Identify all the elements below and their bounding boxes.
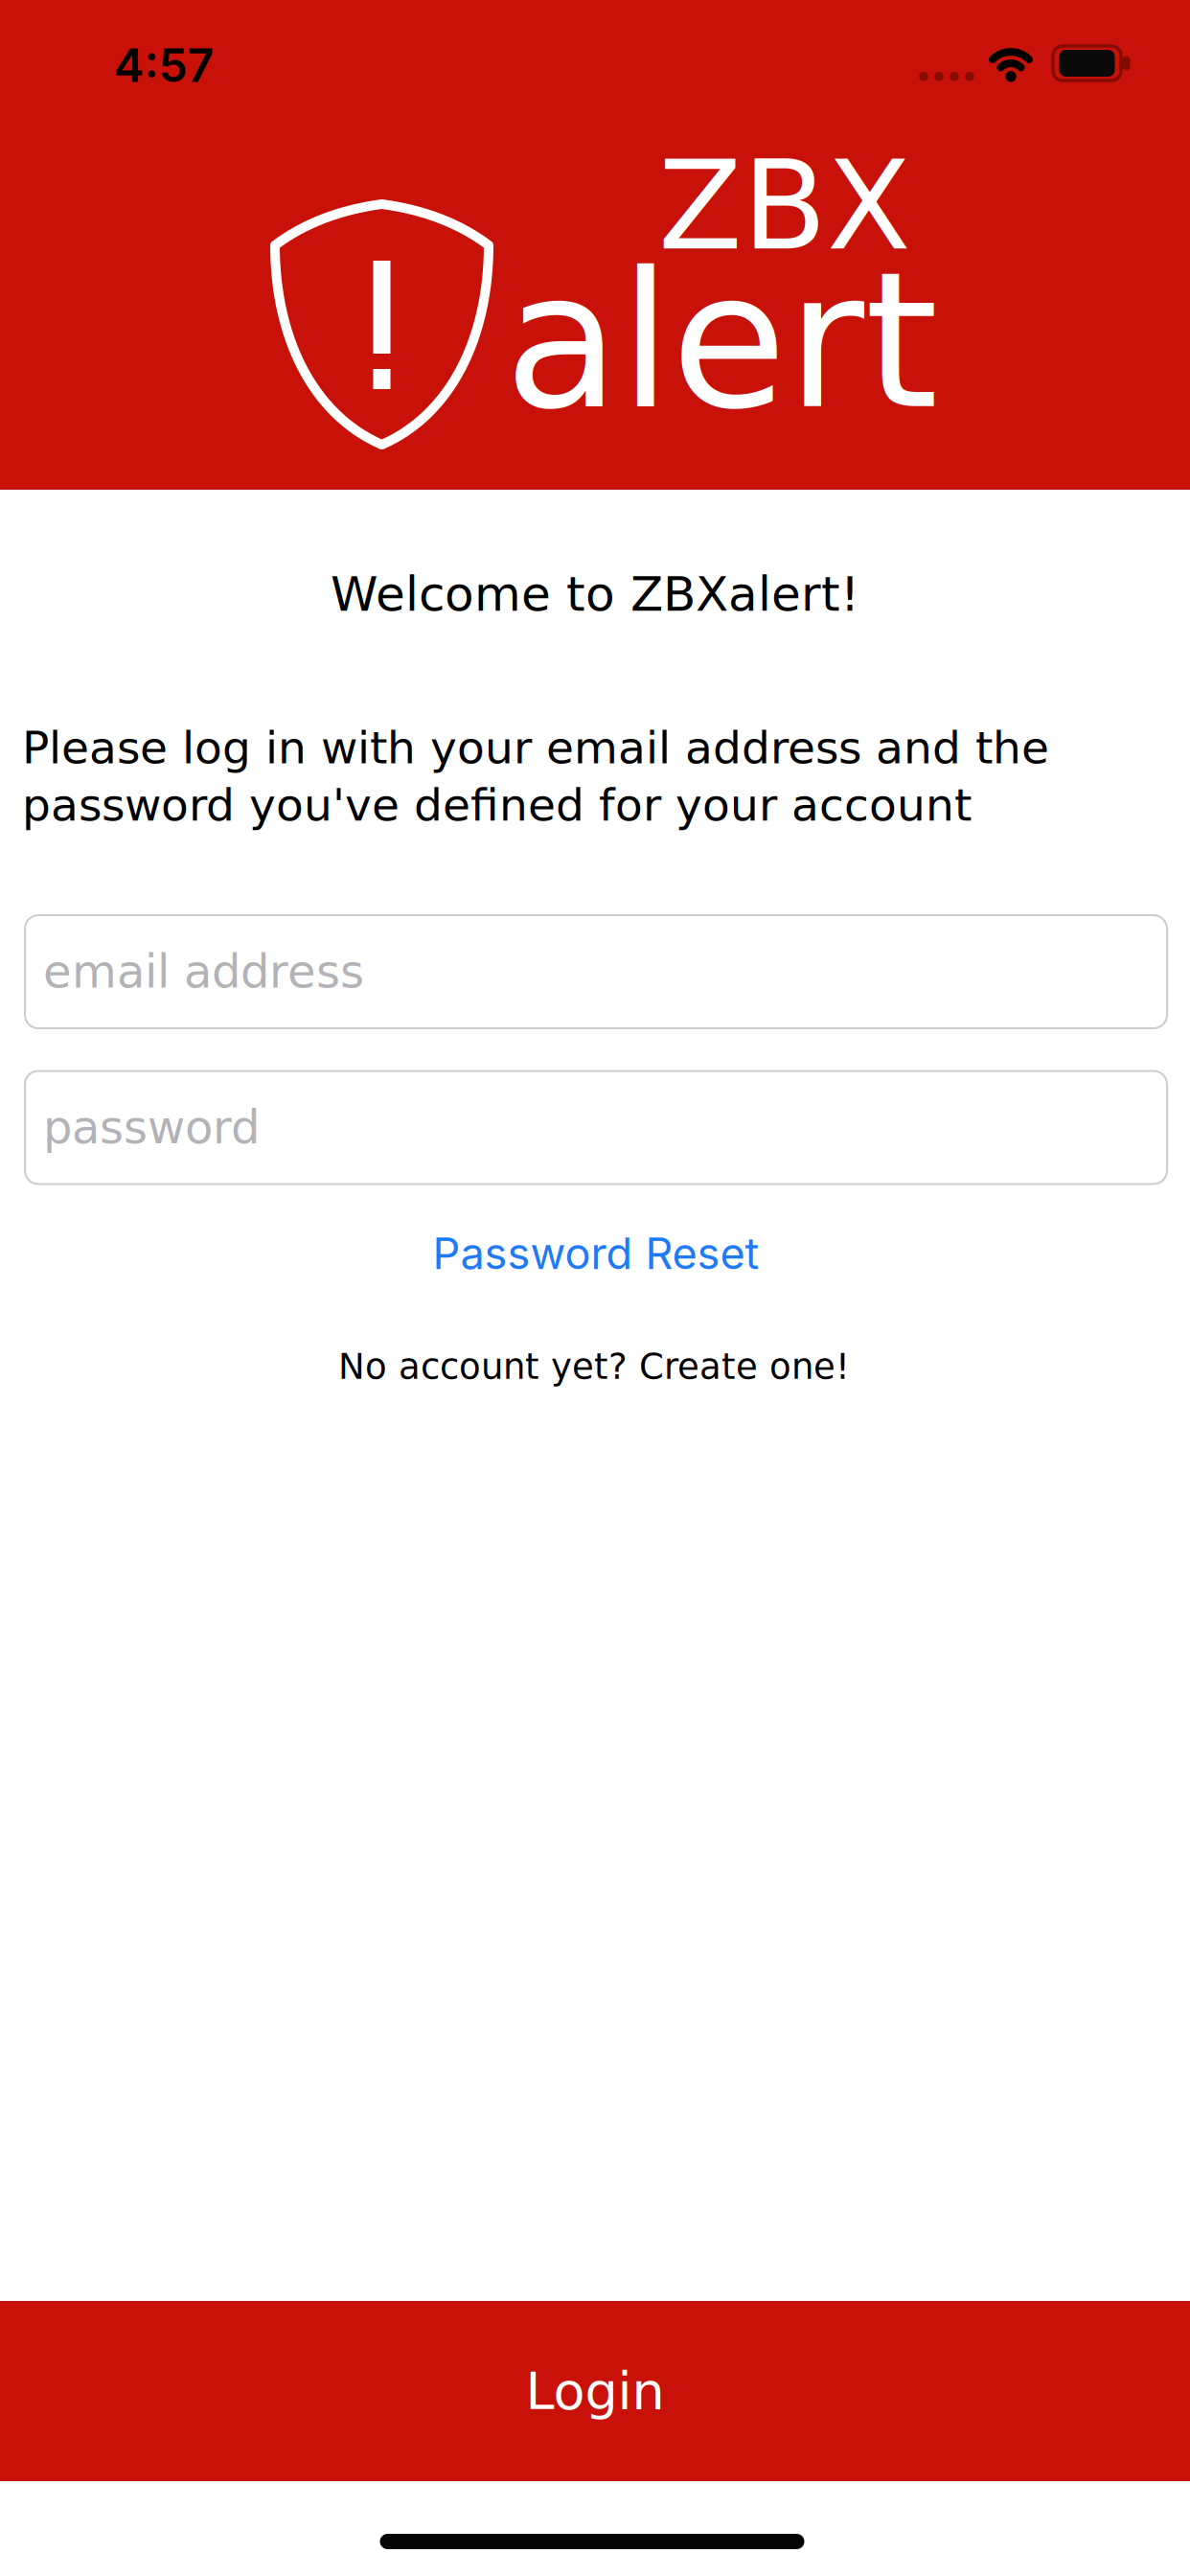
staticText: email address [43,945,364,999]
button[interactable]: email address [25,915,1167,1028]
staticText: Please log in with your email address an… [22,721,1049,831]
staticText: Password Reset [433,1227,759,1280]
staticText: No account yet? Create one! [338,1346,850,1387]
staticText: alert [504,232,938,451]
button[interactable]: password [25,1071,1167,1184]
button[interactable]: No account yet? Create one! [338,1346,850,1387]
staticText: ZBX [658,135,911,277]
staticText: 4:57 [114,37,214,93]
button[interactable]: Login [0,2301,1190,2481]
staticText: Login [526,2361,664,2421]
staticText: password [43,1101,260,1154]
button[interactable]: Password Reset [433,1227,759,1280]
staticText: Welcome to ZBXalert! [331,566,859,622]
